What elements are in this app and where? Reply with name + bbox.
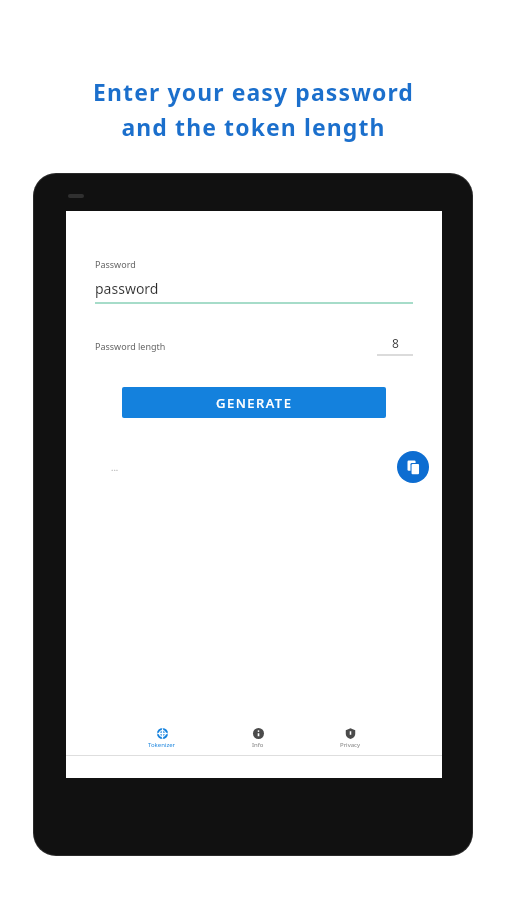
staticText: Privacy <box>340 741 361 749</box>
button[interactable]: Copy password <box>397 451 429 483</box>
staticText: 8 <box>392 335 399 351</box>
staticText: ... <box>111 461 119 473</box>
staticText: password <box>95 279 159 298</box>
button[interactable]: password <box>66 279 442 304</box>
button[interactable]: Password length <box>66 335 442 356</box>
staticText: Tokenizer <box>148 741 176 749</box>
button[interactable]: Privacy <box>333 726 368 751</box>
staticText: Info <box>252 741 264 749</box>
button[interactable]: GENERATE <box>122 387 386 418</box>
staticText: Enter your easy password <box>93 76 414 107</box>
button[interactable]: Tokenizer <box>141 726 183 751</box>
staticText: GENERATE <box>216 394 293 412</box>
staticText: Password length <box>95 340 166 352</box>
button[interactable]: Info <box>245 726 271 751</box>
staticText: and the token length <box>121 111 386 142</box>
staticText: Password <box>95 258 136 270</box>
